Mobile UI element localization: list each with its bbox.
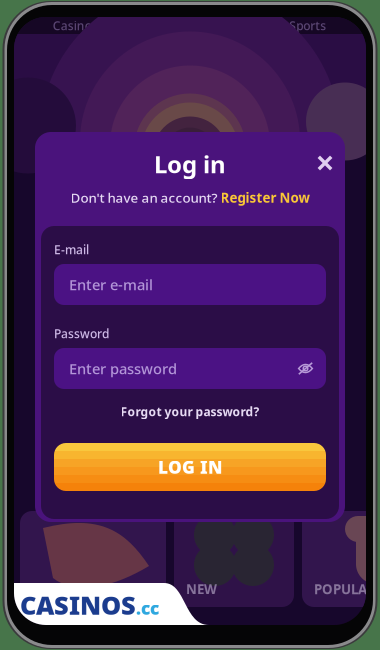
- button[interactable]: Casino: [14, 17, 131, 34]
- staticText: Casino: [53, 17, 92, 33]
- button[interactable]: Close: [311, 149, 339, 177]
- staticText: Enter password: [69, 359, 177, 378]
- staticText: Password: [54, 325, 109, 341]
- staticText: NEW: [186, 580, 217, 598]
- button[interactable]: Register Now: [220, 189, 309, 206]
- staticText: Enter e-mail: [69, 275, 153, 294]
- button[interactable]: [20, 511, 166, 607]
- staticText: POPULAR: [314, 580, 376, 598]
- staticText: Don't have an account?: [70, 189, 217, 206]
- staticText: CASINOS: [20, 588, 136, 622]
- staticText: Log in: [154, 148, 226, 180]
- staticText: Forgot your password?: [120, 403, 259, 419]
- staticText: Sports: [289, 17, 326, 33]
- button[interactable]: Forgot your password?: [54, 403, 326, 420]
- button[interactable]: LOG IN: [54, 443, 326, 491]
- button[interactable]: Show password: [290, 356, 311, 381]
- staticText: E-mail: [54, 241, 89, 257]
- staticText: .cc: [136, 596, 159, 619]
- staticText: Register Now: [220, 189, 309, 206]
- button[interactable]: Sports: [249, 17, 366, 34]
- staticText: LOG IN: [158, 455, 222, 478]
- button[interactable]: POPULAR: [302, 511, 380, 607]
- button[interactable]: NEW: [174, 511, 294, 607]
